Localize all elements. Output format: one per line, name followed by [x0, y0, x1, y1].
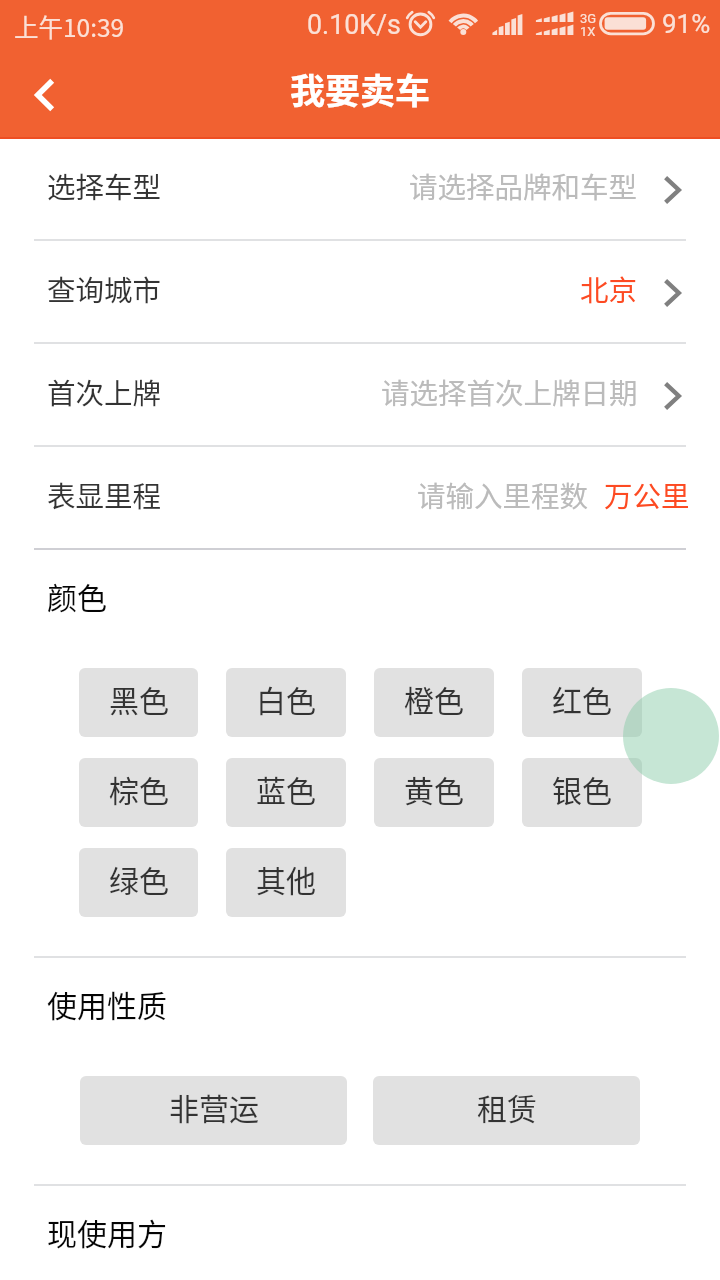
staticText: 请输入里程数: [417, 474, 589, 515]
staticText: 白色: [256, 677, 316, 720]
button[interactable]: 查询城市: [0, 241, 720, 342]
staticText: 3G: [580, 11, 597, 26]
button[interactable]: Floating action: [623, 688, 719, 784]
button[interactable]: 表显里程: [0, 447, 720, 548]
staticText: 现使用方: [47, 1210, 167, 1253]
staticText: 银色: [552, 767, 612, 810]
button[interactable]: 红色: [522, 668, 642, 737]
staticText: 表显里程: [47, 474, 162, 515]
button[interactable]: 银色: [522, 758, 642, 827]
staticText: 橙色: [404, 677, 464, 720]
staticText: 棕色: [109, 767, 169, 810]
button[interactable]: 黑色: [79, 668, 198, 737]
button[interactable]: 首次上牌: [0, 344, 720, 445]
staticText: 首次上牌: [47, 371, 162, 412]
staticText: 其他: [256, 857, 316, 900]
staticText: 查询城市: [47, 268, 162, 309]
button[interactable]: 绿色: [79, 848, 198, 917]
button[interactable]: 白色: [226, 668, 346, 737]
button[interactable]: 选择车型: [0, 138, 720, 239]
staticText: 我要卖车: [0, 63, 720, 114]
button[interactable]: 非营运: [80, 1076, 347, 1145]
button[interactable]: 其他: [226, 848, 346, 917]
staticText: 非营运: [169, 1085, 259, 1128]
button[interactable]: 蓝色: [226, 758, 346, 827]
staticText: 北京: [580, 268, 638, 309]
staticText: 请选择首次上牌日期: [381, 371, 638, 412]
button[interactable]: 棕色: [79, 758, 198, 827]
staticText: 蓝色: [256, 767, 316, 810]
button[interactable]: 黄色: [374, 758, 494, 827]
staticText: 1X: [580, 24, 596, 39]
staticText: 租赁: [477, 1085, 537, 1128]
staticText: 红色: [552, 677, 612, 720]
staticText: 选择车型: [47, 165, 162, 206]
button[interactable]: Back: [0, 48, 88, 138]
staticText: 颜色: [47, 574, 107, 617]
button[interactable]: 租赁: [373, 1076, 640, 1145]
staticText: 黄色: [404, 767, 464, 810]
staticText: 0.10K/s: [307, 9, 401, 40]
staticText: 请选择品牌和车型: [409, 165, 638, 206]
staticText: 使用性质: [47, 982, 167, 1025]
staticText: 绿色: [109, 857, 169, 900]
staticText: 上午10:39: [14, 9, 125, 44]
staticText: 91%: [662, 9, 711, 39]
button[interactable]: 橙色: [374, 668, 494, 737]
staticText: 万公里: [604, 474, 690, 515]
staticText: 黑色: [109, 677, 169, 720]
